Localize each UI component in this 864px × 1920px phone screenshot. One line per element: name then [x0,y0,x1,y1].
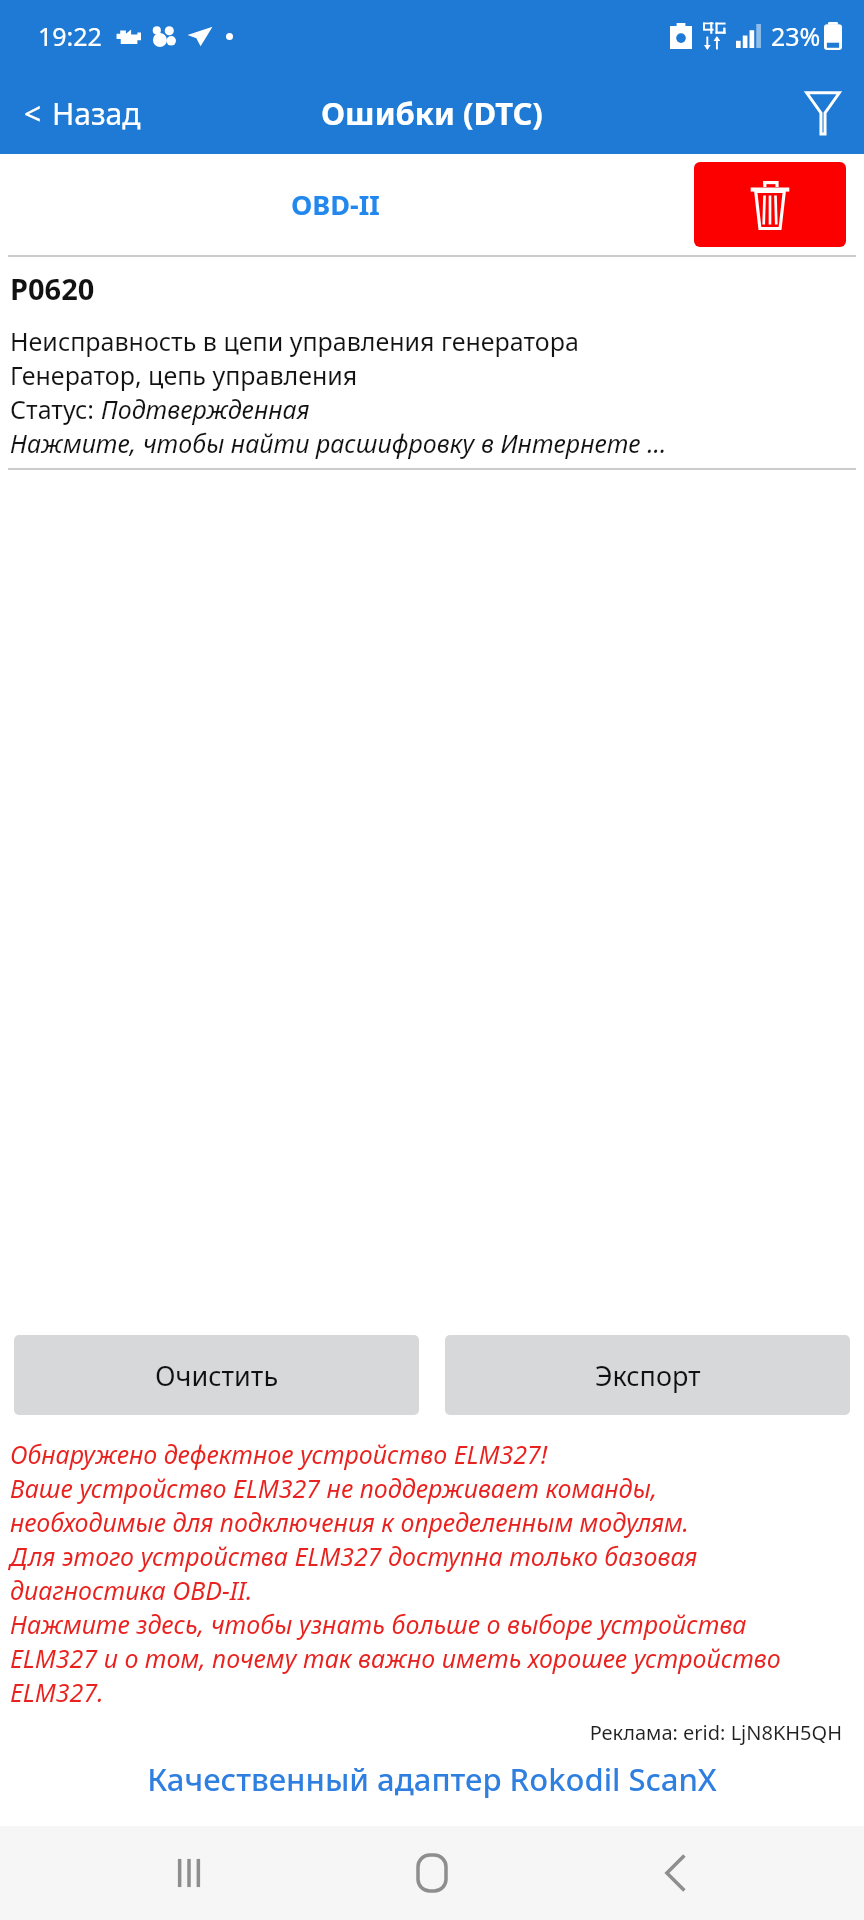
staticText: диагностика OBD-II. [10,1573,253,1607]
staticText: < [24,93,42,134]
button[interactable]: OBD-II [0,154,670,255]
staticText: ELM327 и о том, почему так важно иметь х… [10,1641,781,1675]
button[interactable]: Back [621,1826,731,1920]
staticText: Очистить [155,1357,279,1394]
button[interactable]: Home [377,1826,487,1920]
staticText: P0620 [10,269,95,308]
staticText: Обнаружено дефектное устройство ELM327! [10,1437,548,1471]
staticText: Статус: [10,392,101,426]
staticText: Ваше устройство ELM327 не поддерживает к… [10,1471,658,1505]
staticText: Генератор, цепь управления [10,358,358,392]
button[interactable]: Экспорт [445,1335,850,1415]
staticText: Нажмите, чтобы найти расшифровку в Интер… [10,426,667,460]
staticText: Качественный адаптер Rokodil ScanX [147,1758,717,1800]
staticText: Неисправность в цепи управления генерато… [10,324,579,358]
button[interactable]: P0620 [0,257,864,468]
button[interactable]: Filter [782,79,864,147]
staticText: Реклама: erid: LjN8KH5QH [0,1719,842,1746]
button[interactable]: Delete [694,162,846,247]
staticText: ELM327. [10,1675,104,1709]
staticText: 23% [771,19,821,53]
staticText: Нажмите здесь, чтобы узнать больше о выб… [10,1607,747,1641]
staticText: Назад [52,93,141,134]
button[interactable]: Обнаружено дефектное устройство ELM327! [0,1437,864,1709]
staticText: Для этого устройства ELM327 доступна тол… [10,1539,698,1573]
staticText: Экспорт [595,1357,701,1394]
staticText: необходимые для подключения к определенн… [10,1505,689,1539]
button[interactable]: Качественный адаптер Rokodil ScanX [0,1758,864,1800]
staticText: 19:22 [38,19,102,53]
staticText: Подтвержденная [101,392,310,426]
button[interactable]: Recents [134,1826,244,1920]
staticText: OBD-II [291,186,380,223]
button[interactable]: Очистить [14,1335,419,1415]
button[interactable]: < [0,83,165,144]
staticText: Ошибки (DTC) [321,92,543,134]
